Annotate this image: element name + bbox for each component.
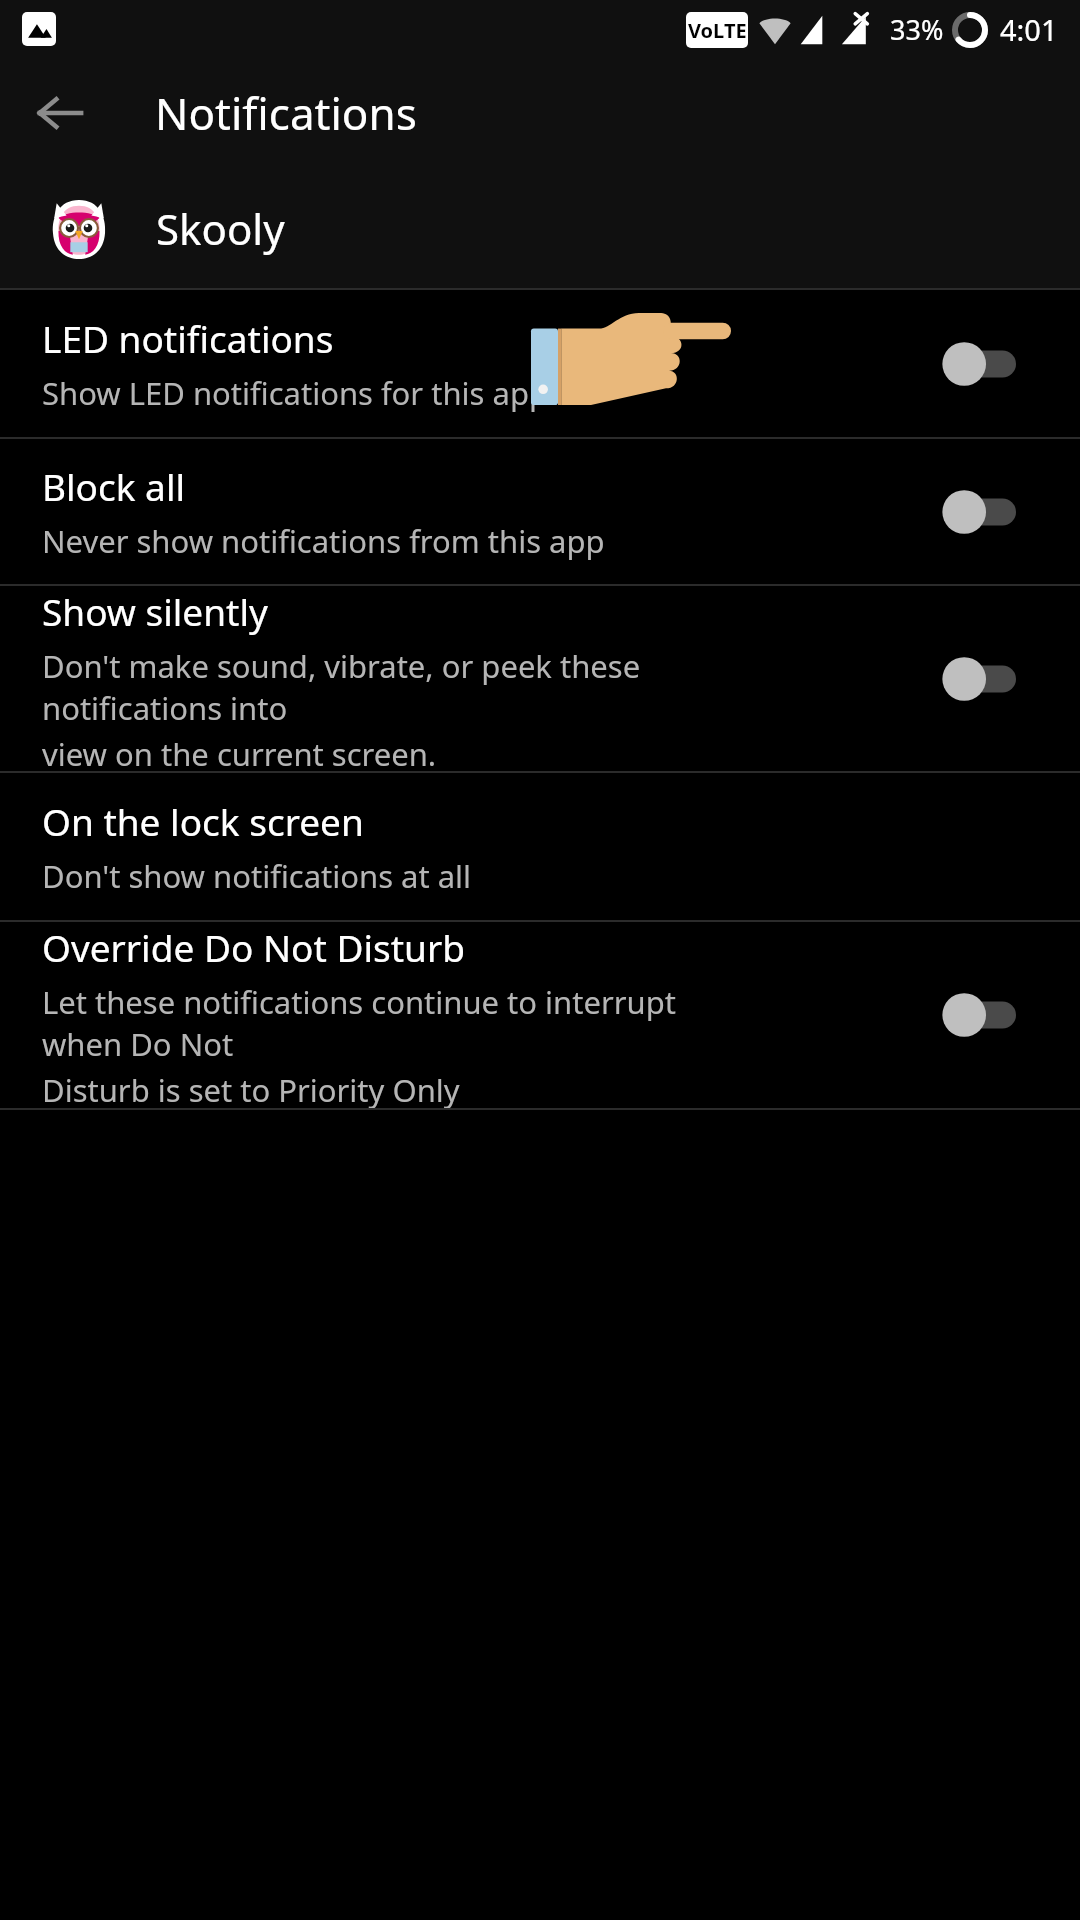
staticText: 33% [890,11,944,48]
staticText: Block all [42,461,185,511]
staticText: Show silently [42,586,268,636]
button[interactable]: Block all [0,439,1080,584]
button[interactable]: Toggle [942,486,1016,538]
button[interactable]: Skooly [0,168,1080,288]
staticText: Never show notifications from this app [42,520,605,562]
staticText: view on the current screen. [42,733,437,771]
button[interactable]: Back [22,75,98,151]
staticText: Don't make sound, vibrate, or peek these… [42,645,720,729]
staticText: Don't show notifications at all [42,855,472,897]
staticText: Skooly [156,200,285,257]
button[interactable]: LED notifications [0,290,1080,437]
staticText: Override Do Not Disturb [42,922,465,972]
staticText: VoLTE [688,17,747,44]
staticText: Let these notifications continue to inte… [42,981,720,1065]
staticText: Show LED notifications for this app [42,372,549,414]
staticText: Disturb is set to Priority Only [42,1069,460,1108]
button[interactable]: Toggle [942,989,1016,1041]
button[interactable]: Toggle [942,653,1016,705]
button[interactable]: Override Do Not Disturb [0,922,1080,1108]
staticText: Notifications [155,83,417,143]
staticText: 4:01 [1000,10,1058,49]
button[interactable]: Toggle [942,338,1016,390]
button[interactable]: Show silently [0,586,1080,771]
staticText: LED notifications [42,313,334,363]
button[interactable]: On the lock screen [0,773,1080,920]
staticText: On the lock screen [42,796,364,846]
